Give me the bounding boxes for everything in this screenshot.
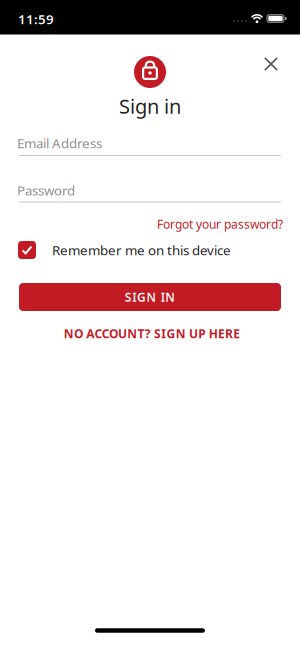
button[interactable]: Password [17,181,279,199]
staticText: SIGN IN [125,289,175,305]
staticText: Forgot your password? [157,216,283,232]
staticText: Password [17,181,75,199]
button[interactable]: NO ACCOUNT? SIGN UP HERE [64,325,240,341]
staticText: Sign in [119,93,181,119]
staticText: Remember me on this device [52,241,231,259]
staticText: 11:59 [18,10,54,28]
button[interactable]: Remember me on this device [18,237,282,263]
button[interactable]: Email Address [17,134,279,152]
button[interactable]: Forgot your password? [21,216,283,232]
staticText: NO ACCOUNT? SIGN UP HERE [64,325,240,341]
staticText: Email Address [17,134,102,152]
button[interactable]: SIGN IN [19,283,281,311]
button[interactable]: Close [256,49,286,79]
